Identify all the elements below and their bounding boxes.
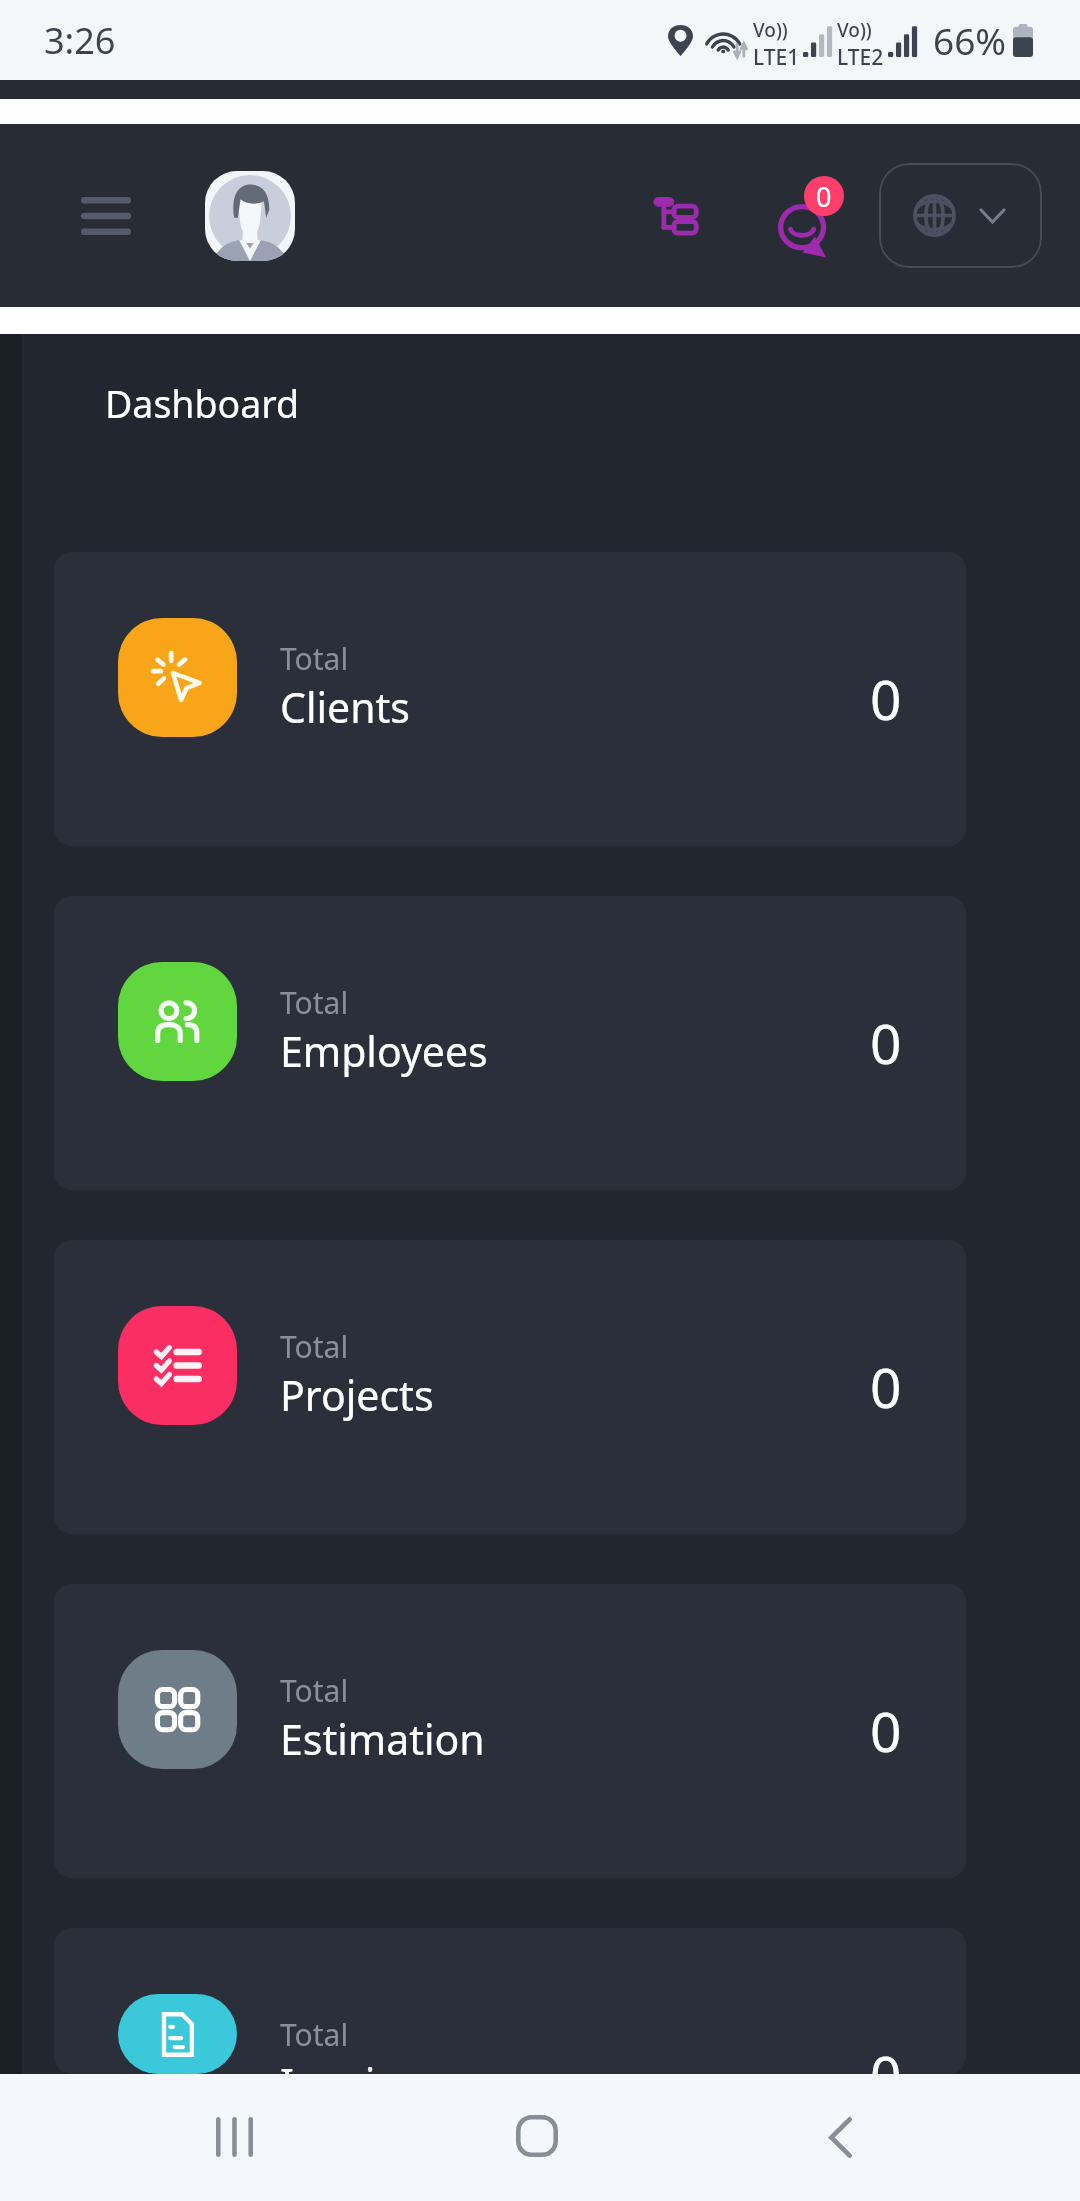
staticText: Projects: [280, 1367, 434, 1423]
staticText: 3:26: [44, 16, 116, 65]
staticText: 66%: [933, 15, 1007, 65]
staticText: Invoices: [280, 2055, 438, 2074]
staticText: 0: [816, 178, 832, 215]
staticText: Estimation: [280, 1711, 485, 1767]
staticText: Total: [280, 1326, 349, 1367]
staticText: Vo)): [837, 17, 872, 43]
staticText: 0: [870, 1005, 902, 1080]
button[interactable]: Recents: [179, 2082, 289, 2192]
staticText: Total: [280, 982, 349, 1023]
staticText: Total: [280, 638, 349, 679]
staticText: Dashboard: [105, 378, 300, 429]
staticText: LTE2: [837, 43, 884, 72]
button[interactable]: Language: [879, 163, 1042, 268]
staticText: 0: [870, 661, 902, 736]
button[interactable]: Profile: [205, 171, 295, 261]
button[interactable]: Total: [54, 896, 966, 1190]
button[interactable]: Total: [54, 1240, 966, 1534]
staticText: LTE1: [753, 43, 800, 72]
staticText: Total: [280, 2014, 349, 2055]
button[interactable]: Menu: [58, 168, 154, 264]
button[interactable]: Back: [785, 2082, 895, 2192]
staticText: Vo)): [753, 17, 788, 43]
staticText: 0: [870, 2037, 902, 2074]
button[interactable]: Messages: [768, 166, 860, 266]
staticText: Clients: [280, 679, 410, 735]
staticText: 0: [870, 1349, 902, 1424]
button[interactable]: Total: [54, 552, 966, 846]
button[interactable]: Home: [482, 2081, 592, 2191]
button[interactable]: Organisation chart: [636, 176, 716, 256]
staticText: 0: [870, 1693, 902, 1768]
staticText: Total: [280, 1670, 349, 1711]
staticText: Employees: [280, 1023, 488, 1079]
button[interactable]: Total: [54, 1584, 966, 1878]
button[interactable]: Total: [54, 1928, 966, 2074]
